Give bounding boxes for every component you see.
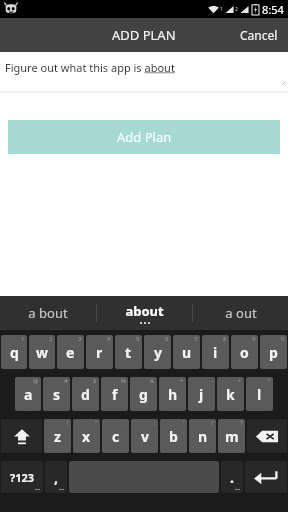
button[interactable]: s (43, 377, 70, 411)
staticText: y (154, 343, 162, 362)
staticText: Figure out what this app is about (5, 60, 175, 75)
staticText: @ (33, 377, 39, 385)
staticText: ; (154, 419, 156, 427)
button[interactable]: h (159, 377, 186, 411)
button[interactable]: , (45, 461, 67, 493)
button[interactable]: l (246, 377, 273, 411)
button[interactable]: Add Plan (8, 120, 280, 154)
staticText: 1 (21, 335, 25, 343)
staticText: - (211, 377, 213, 385)
staticText: 7 (194, 335, 198, 343)
button[interactable]: d (72, 377, 99, 411)
staticText: n (198, 427, 208, 446)
staticText: u (182, 343, 192, 362)
staticText: Add Plan (117, 128, 172, 146)
button[interactable]: w (29, 335, 55, 369)
staticText: a (24, 385, 33, 404)
staticText: i (213, 343, 218, 362)
button[interactable]: a bout (0, 296, 96, 330)
button[interactable]: Enter (245, 461, 287, 493)
button[interactable]: Backspace (247, 419, 287, 453)
button[interactable]: t (115, 335, 142, 369)
staticText: 8 (223, 335, 227, 343)
staticText: m (225, 427, 239, 446)
staticText: 9 (252, 335, 256, 343)
staticText: ? (240, 419, 243, 427)
button[interactable]: . (221, 461, 243, 493)
button[interactable]: r (86, 335, 113, 369)
staticText: + (238, 377, 242, 385)
staticText: q (10, 343, 19, 362)
staticText: & (150, 377, 155, 385)
button[interactable]: p (260, 335, 287, 369)
staticText: s (53, 385, 61, 404)
button[interactable]: a out (193, 296, 288, 330)
button[interactable]: e (57, 335, 84, 369)
staticText: e (66, 343, 75, 362)
button[interactable]: j (188, 377, 215, 411)
staticText: d (81, 385, 90, 404)
staticText: t (125, 343, 132, 362)
staticText: " (95, 419, 98, 427)
button[interactable]: Shift (1, 419, 42, 453)
staticText: Cancel (240, 27, 278, 43)
button[interactable]: c (102, 419, 129, 453)
staticText: 8:54 (262, 2, 284, 17)
button[interactable]: o (231, 335, 258, 369)
staticText: a out (225, 304, 257, 322)
staticText: h (168, 385, 178, 404)
button[interactable]: about (97, 296, 192, 330)
staticText: ! (67, 419, 69, 427)
staticText: c (112, 427, 120, 446)
staticText: / (211, 419, 214, 427)
staticText: k (226, 385, 235, 404)
staticText: 1 (220, 6, 223, 13)
staticText: ?123 (10, 470, 35, 485)
button[interactable]: f (101, 377, 128, 411)
button[interactable]: k (217, 377, 244, 411)
staticText: w (36, 343, 48, 362)
staticText: a bout (28, 304, 68, 322)
staticText: r (96, 343, 103, 362)
staticText: * (180, 377, 184, 385)
button[interactable]: u (173, 335, 200, 369)
staticText: 2 (235, 6, 238, 13)
staticText: 5 (136, 335, 140, 343)
staticText: % (121, 377, 126, 385)
button[interactable]: i (202, 335, 229, 369)
button[interactable]: g (130, 377, 157, 411)
staticText: f (112, 385, 118, 404)
button[interactable]: z (44, 419, 71, 453)
button[interactable]: y (144, 335, 171, 369)
staticText: $ (93, 377, 97, 385)
button[interactable]: b (160, 419, 187, 453)
staticText: # (64, 377, 68, 385)
staticText: x (82, 427, 91, 446)
staticText: . (230, 468, 234, 487)
staticText: ' (183, 419, 185, 427)
staticText: 6 (165, 335, 169, 343)
button[interactable]: v (131, 419, 158, 453)
button[interactable]: x (73, 419, 100, 453)
staticText: 4 (107, 335, 111, 343)
staticText: ADD PLAN (112, 26, 176, 44)
button[interactable]: m (218, 419, 245, 453)
button[interactable]: q (1, 335, 27, 369)
button[interactable]: Cancel (230, 21, 288, 49)
staticText: , (54, 468, 58, 487)
button[interactable]: n (189, 419, 216, 453)
staticText: 2 (49, 335, 53, 343)
button[interactable]: Figure out what this app is about (0, 52, 288, 91)
staticText: j (199, 385, 204, 404)
staticText: v (141, 427, 149, 446)
staticText: g (139, 385, 148, 404)
staticText: 0 (281, 335, 285, 343)
staticText: l (257, 385, 262, 404)
staticText: about (125, 302, 164, 320)
staticText: p (269, 343, 278, 362)
staticText: o (240, 343, 249, 362)
staticText: " (268, 377, 271, 385)
button[interactable]: ?123 (1, 461, 43, 493)
button[interactable]: a (15, 377, 41, 411)
